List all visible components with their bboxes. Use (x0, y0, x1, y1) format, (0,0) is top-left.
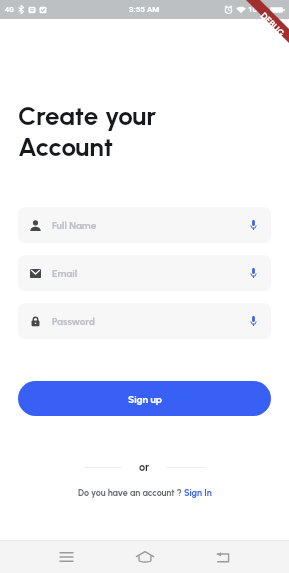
button[interactable]: Password (18, 303, 271, 339)
button[interactable]: Full Name (18, 207, 271, 243)
staticText: Sign up (128, 393, 162, 405)
button[interactable]: Recent apps (53, 544, 79, 570)
staticText: Full Name (52, 219, 250, 231)
staticText: Email (52, 267, 250, 279)
staticText: Sign In (184, 487, 212, 498)
button[interactable]: Home (132, 544, 158, 570)
staticText: 4G (5, 6, 14, 14)
staticText: Account (18, 131, 114, 162)
staticText: 100% (248, 5, 268, 14)
staticText: Do you have an account ? (78, 487, 184, 498)
button[interactable]: Sign up (18, 381, 271, 416)
button[interactable]: Email (18, 255, 271, 291)
button[interactable]: Back (210, 544, 236, 570)
staticText: or (139, 461, 150, 474)
button[interactable]: Sign In (184, 487, 212, 498)
staticText: Password (52, 315, 250, 327)
staticText: DEBUG (258, 10, 287, 39)
staticText: Create your (18, 100, 157, 131)
staticText: 3:55 AM (129, 5, 160, 14)
